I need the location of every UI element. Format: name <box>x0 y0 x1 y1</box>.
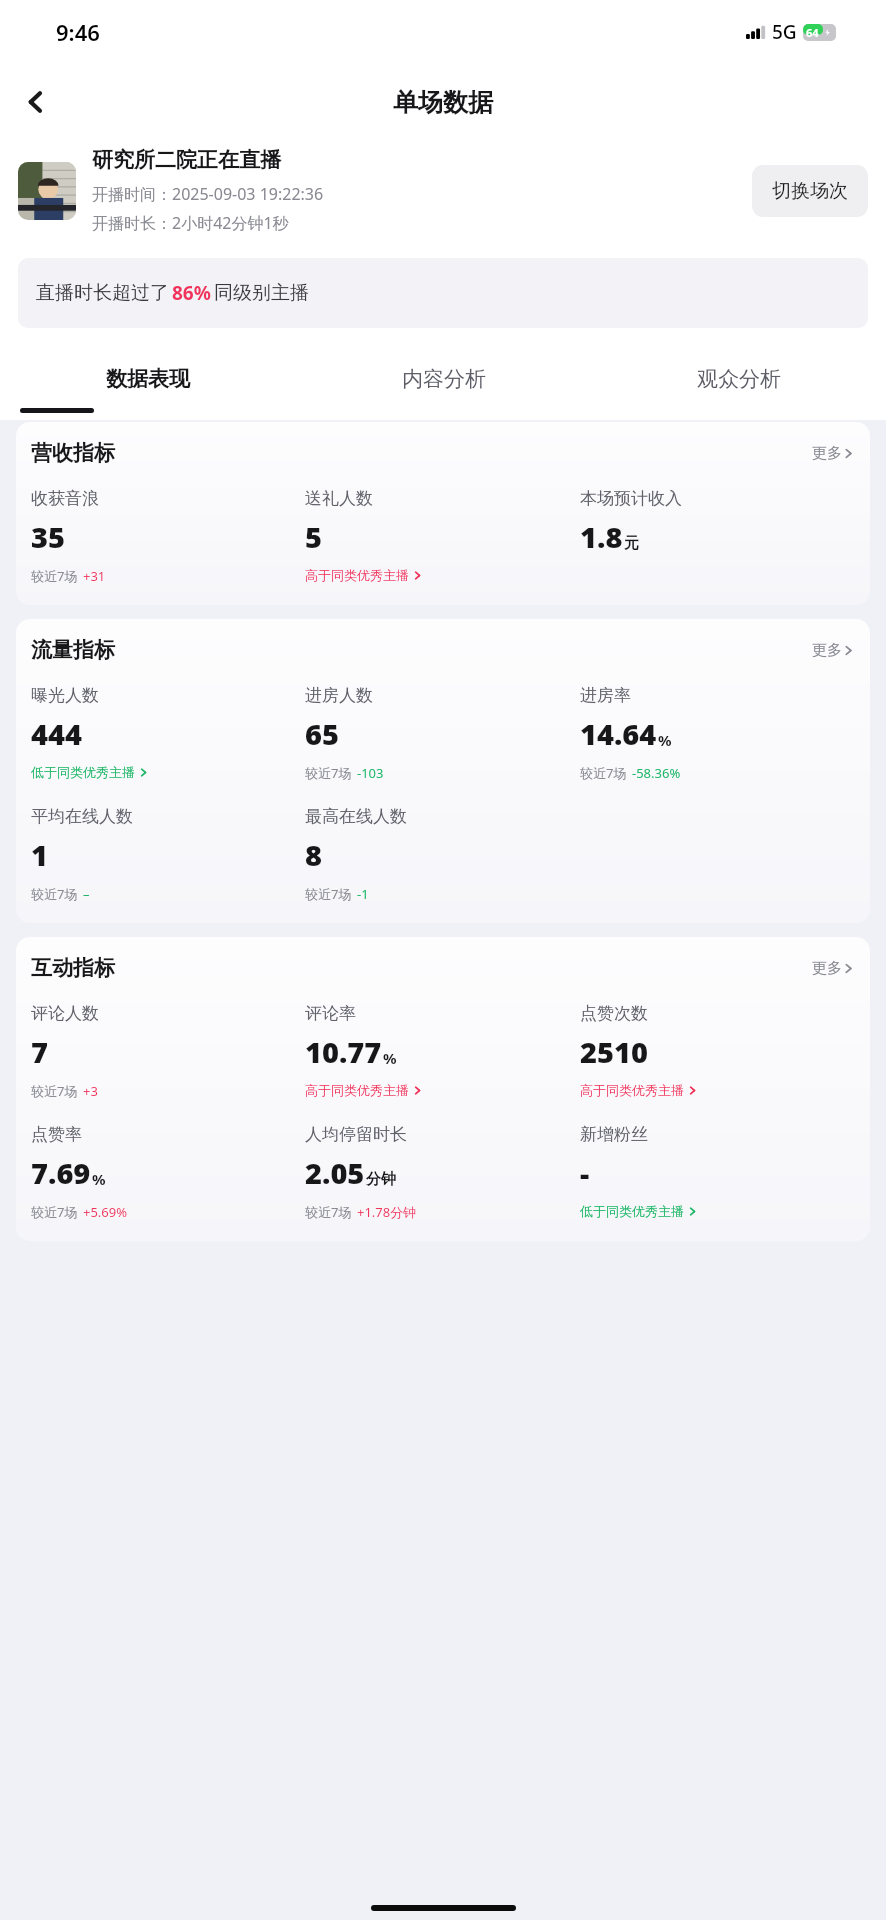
staticText: 444 <box>31 714 82 753</box>
staticText: +31 <box>83 567 106 585</box>
staticText: 较近7场 <box>31 1082 78 1100</box>
button[interactable]: 切换场次 <box>752 165 868 217</box>
staticText: % <box>92 1169 106 1189</box>
staticText: 进房率 <box>580 685 631 706</box>
staticText: -58.36% <box>632 764 681 782</box>
staticText: 点赞次数 <box>580 1003 648 1024</box>
staticText: 7 <box>31 1032 48 1071</box>
staticText: +5.69% <box>83 1203 128 1221</box>
staticText: 14.64 <box>580 714 657 753</box>
staticText: 曝光人数 <box>31 685 99 706</box>
staticText: +3 <box>83 1082 98 1100</box>
staticText: 较近7场 <box>31 567 78 585</box>
staticText: 5G <box>772 19 797 45</box>
staticText: 65 <box>305 714 339 753</box>
staticText: 人均停留时长 <box>305 1124 407 1145</box>
staticText: 较近7场 <box>305 764 352 782</box>
staticText: 评论率 <box>305 1003 356 1024</box>
staticText: 较近7场 <box>580 764 627 782</box>
staticText: 较近7场 <box>305 885 352 903</box>
staticText: 低于同类优秀主播 <box>31 764 135 780</box>
staticText: 最高在线人数 <box>305 806 407 827</box>
button[interactable]: 直播时长超过了 <box>18 258 868 328</box>
staticText: - <box>580 1153 590 1192</box>
staticText: 评论人数 <box>31 1003 99 1024</box>
staticText: 开播时间：2025-09-03 19:22:36 <box>92 183 324 205</box>
button[interactable]: 更多 <box>812 444 855 463</box>
staticText: 1.8 <box>580 517 623 556</box>
staticText: 分钟 <box>366 1170 396 1189</box>
staticText: 互动指标 <box>31 955 115 981</box>
staticText: 点赞率 <box>31 1124 82 1145</box>
staticText: 5 <box>305 517 322 556</box>
button[interactable]: 主播头像 <box>18 162 76 220</box>
staticText: % <box>383 1048 397 1068</box>
staticText: 同级别主播 <box>214 281 309 305</box>
staticText: 高于同类优秀主播 <box>580 1082 684 1098</box>
staticText: 收获音浪 <box>31 488 99 509</box>
staticText: 元 <box>624 534 639 553</box>
staticText: 1 <box>31 835 48 874</box>
staticText: 2.05 <box>305 1153 365 1192</box>
staticText: 流量指标 <box>31 637 115 663</box>
staticText: 观众分析 <box>697 366 781 392</box>
staticText: 研究所二院正在直播 <box>92 147 281 173</box>
staticText: -1 <box>357 885 369 903</box>
button[interactable]: 返回 <box>12 78 60 126</box>
staticText: 较近7场 <box>31 885 78 903</box>
staticText: 切换场次 <box>772 179 848 203</box>
button[interactable]: 内容分析 <box>296 350 591 408</box>
staticText: 高于同类优秀主播 <box>305 1082 409 1098</box>
staticText: 较近7场 <box>31 1203 78 1221</box>
staticText: % <box>658 730 672 750</box>
staticText: 本场预计收入 <box>580 488 682 509</box>
staticText: 进房人数 <box>305 685 373 706</box>
staticText: 64 <box>806 25 819 40</box>
staticText: 营收指标 <box>31 440 115 466</box>
staticText: 7.69 <box>31 1153 91 1192</box>
button[interactable]: 观众分析 <box>591 350 886 408</box>
staticText: +1.78分钟 <box>357 1203 417 1221</box>
staticText: 8 <box>305 835 322 874</box>
staticText: 86% <box>172 280 211 306</box>
staticText: 2510 <box>580 1032 648 1071</box>
button[interactable]: 更多 <box>812 959 855 978</box>
staticText: 内容分析 <box>402 366 486 392</box>
staticText: 直播时长超过了 <box>36 281 169 305</box>
staticText: 平均在线人数 <box>31 806 133 827</box>
staticText: 送礼人数 <box>305 488 373 509</box>
staticText: 数据表现 <box>106 366 190 392</box>
staticText: 更多 <box>812 444 842 463</box>
staticText: 较近7场 <box>305 1203 352 1221</box>
staticText: 开播时长：2小时42分钟1秒 <box>92 212 289 234</box>
staticText: 35 <box>31 517 65 556</box>
button[interactable]: 数据表现 <box>0 350 296 408</box>
staticText: 9:46 <box>56 17 100 47</box>
staticText: 更多 <box>812 641 842 660</box>
staticText: 10.77 <box>305 1032 382 1071</box>
staticText: 新增粉丝 <box>580 1124 648 1145</box>
staticText: – <box>83 885 90 903</box>
staticText: -103 <box>357 764 384 782</box>
staticText: 单场数据 <box>393 87 493 118</box>
staticText: 更多 <box>812 959 842 978</box>
staticText: 高于同类优秀主播 <box>305 567 409 583</box>
button[interactable]: 更多 <box>812 641 855 660</box>
staticText: 低于同类优秀主播 <box>580 1203 684 1219</box>
